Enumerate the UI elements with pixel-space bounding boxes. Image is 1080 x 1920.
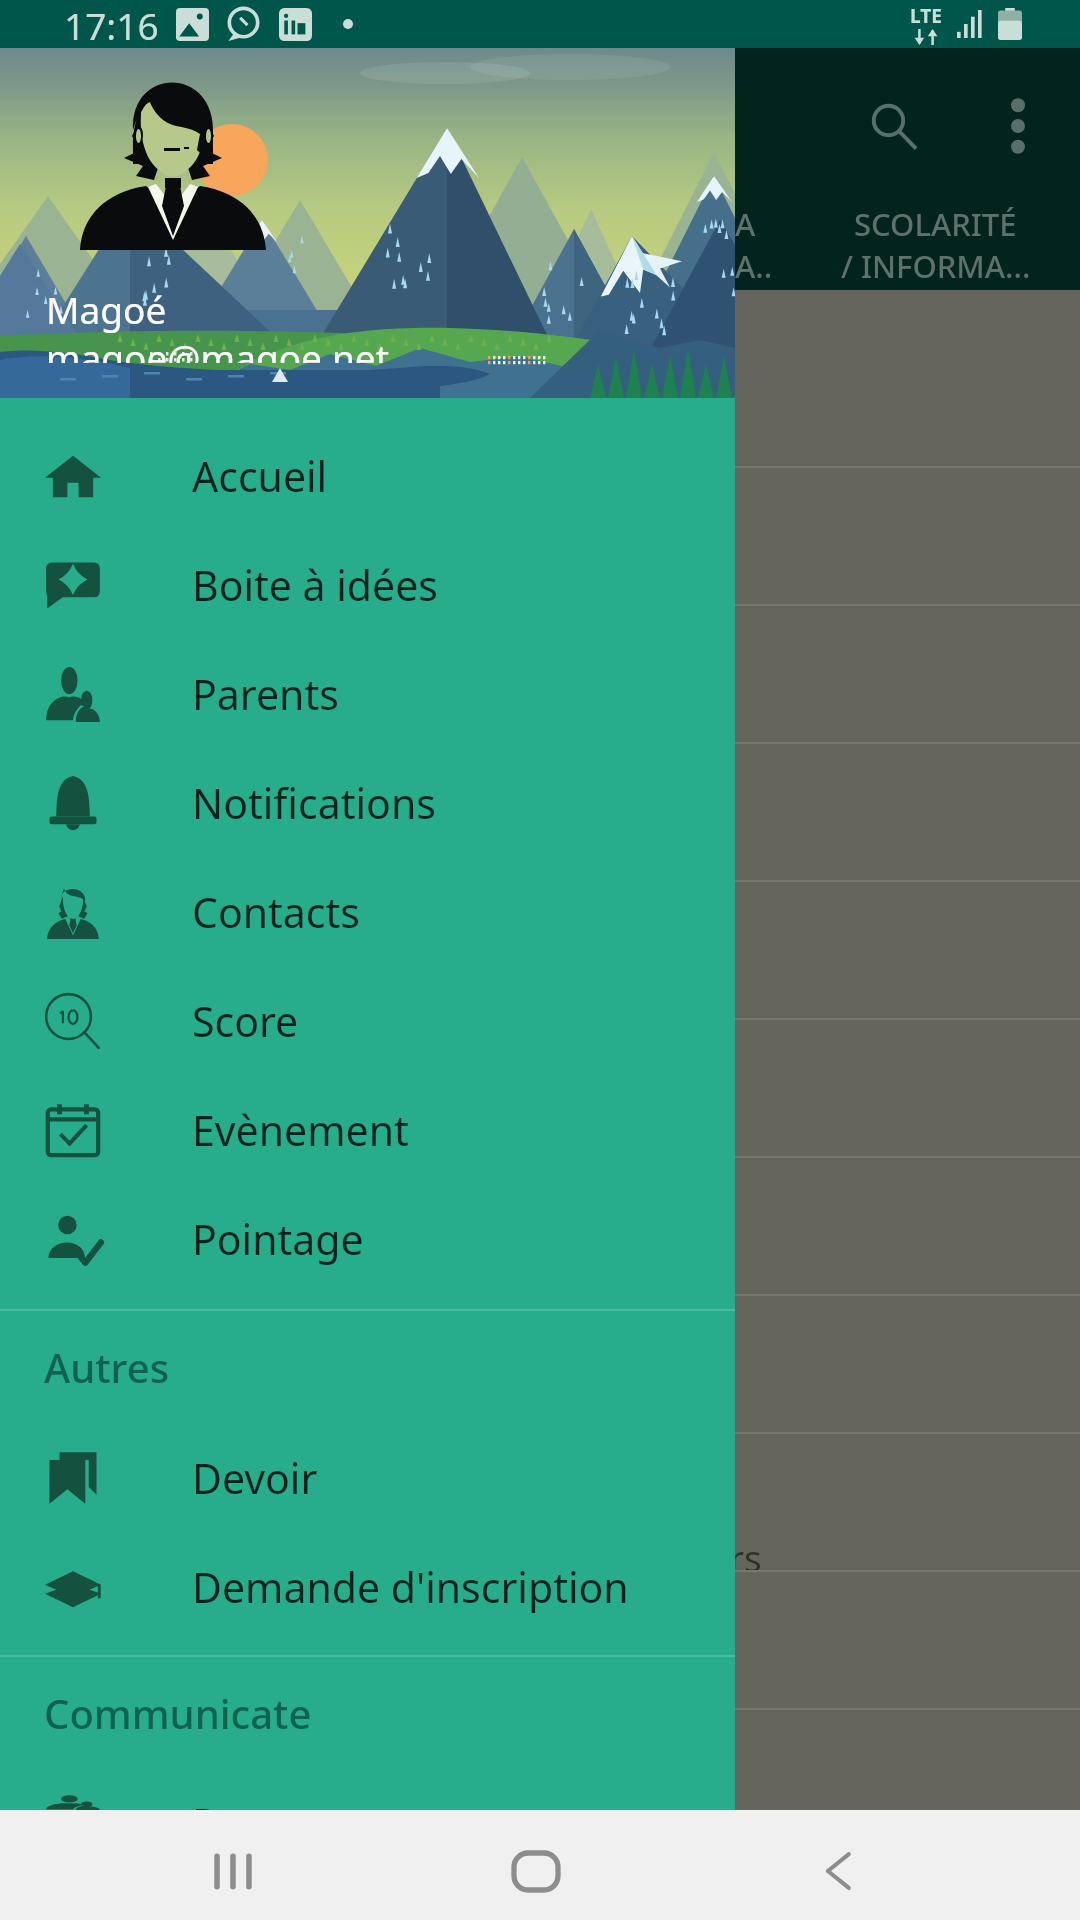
- button[interactable]: Home: [477, 1828, 595, 1914]
- staticText: Score: [192, 993, 299, 1049]
- staticText: Parents: [192, 666, 339, 722]
- staticText: 17:16: [64, 0, 159, 48]
- staticText: Parents: [192, 1795, 339, 1810]
- button[interactable]: [0, 1294, 1080, 1432]
- button[interactable]: Recent apps: [174, 1828, 292, 1914]
- button[interactable]: Parents: [0, 1795, 735, 1810]
- staticText: Communicate: [44, 1686, 312, 1740]
- button[interactable]: Back: [779, 1828, 897, 1914]
- staticText: LTE: [910, 3, 942, 29]
- staticText: A...: [735, 245, 777, 287]
- button[interactable]: [0, 1846, 1080, 1920]
- button[interactable]: Cours: [0, 1432, 1080, 1570]
- staticText: magoe@magoe.net: [46, 332, 389, 363]
- staticText: / INFORMA...: [841, 245, 1031, 287]
- button[interactable]: [0, 1018, 1080, 1156]
- staticText: Magoé: [46, 284, 167, 334]
- staticText: Accueil: [192, 448, 328, 504]
- staticText: Cours: [660, 1532, 762, 1582]
- staticText: Pointage: [192, 1211, 364, 1267]
- button[interactable]: A: [735, 203, 777, 303]
- button[interactable]: Search: [866, 98, 922, 154]
- button[interactable]: More options: [990, 98, 1046, 154]
- button[interactable]: [0, 1156, 1080, 1294]
- staticText: Demande d'inscription: [192, 1559, 629, 1615]
- staticText: Boite à idées: [192, 557, 438, 613]
- button[interactable]: Notifications: [0, 748, 735, 857]
- button[interactable]: Evènement: [0, 1075, 735, 1184]
- button[interactable]: Accueil: [0, 421, 735, 530]
- button[interactable]: Score: [0, 966, 735, 1075]
- staticText: Evènement: [192, 1102, 409, 1158]
- button[interactable]: Demande d'inscription: [0, 1532, 735, 1641]
- button[interactable]: SCOLARITÉ: [763, 203, 1080, 303]
- button[interactable]: [0, 466, 1080, 604]
- button[interactable]: [0, 1708, 1080, 1846]
- staticText: Autres: [44, 1340, 170, 1394]
- button[interactable]: [0, 742, 1080, 880]
- staticText: Devoir: [192, 1450, 318, 1506]
- button[interactable]: [0, 880, 1080, 1018]
- button[interactable]: Boite à idées: [0, 530, 735, 639]
- button[interactable]: Contacts: [0, 857, 735, 966]
- staticText: A: [735, 203, 756, 245]
- button[interactable]: [0, 1570, 1080, 1708]
- button[interactable]: Parents: [0, 639, 735, 748]
- staticText: Contacts: [192, 884, 360, 940]
- staticText: SCOLARITÉ: [854, 203, 1017, 245]
- button[interactable]: Pointage: [0, 1184, 735, 1293]
- button[interactable]: Devoir: [0, 1423, 735, 1532]
- button[interactable]: [0, 604, 1080, 742]
- staticText: Notifications: [192, 775, 436, 831]
